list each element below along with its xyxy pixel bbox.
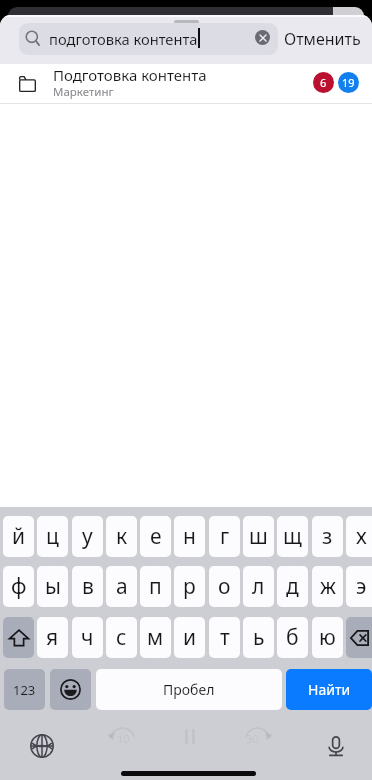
button[interactable]: в xyxy=(72,566,103,607)
button[interactable]: 123 xyxy=(4,669,45,710)
button[interactable]: я xyxy=(37,617,68,658)
staticText: 19 xyxy=(342,75,355,90)
button[interactable]: щ xyxy=(277,516,308,557)
button[interactable]: ж xyxy=(312,566,343,607)
button[interactable]: й xyxy=(3,516,34,557)
staticText: Подготовка контента xyxy=(53,65,207,85)
staticText: я xyxy=(46,623,59,652)
button[interactable]: з xyxy=(312,516,343,557)
button[interactable]: с xyxy=(106,617,137,658)
staticText: к xyxy=(116,522,128,551)
staticText: л xyxy=(252,572,265,601)
button[interactable]: Emoji xyxy=(50,669,91,710)
staticText: д xyxy=(286,572,299,601)
staticText: ш xyxy=(249,522,268,551)
button[interactable]: р xyxy=(174,566,205,607)
staticText: е xyxy=(150,522,162,551)
button[interactable]: л xyxy=(243,566,274,607)
staticText: х xyxy=(356,522,367,551)
staticText: ю xyxy=(319,623,336,652)
button[interactable]: Подготовка контента xyxy=(0,64,372,104)
staticText: Пробел xyxy=(163,680,215,699)
button[interactable]: ф xyxy=(3,566,34,607)
button[interactable]: Change language xyxy=(28,732,56,760)
button[interactable]: г xyxy=(209,516,240,557)
staticText: в xyxy=(82,572,94,601)
button[interactable]: Clear text xyxy=(255,30,270,45)
staticText: н xyxy=(183,522,196,551)
button[interactable]: ы xyxy=(37,566,68,607)
button[interactable]: подготовка контента xyxy=(19,23,278,55)
staticText: Найти xyxy=(308,680,351,699)
staticText: с xyxy=(116,623,127,652)
staticText: 10 xyxy=(117,731,130,746)
button[interactable]: ю xyxy=(312,617,343,658)
button[interactable]: Отменить xyxy=(284,23,364,55)
button[interactable]: б xyxy=(277,617,308,658)
button[interactable]: Backspace xyxy=(346,617,372,658)
button[interactable]: н xyxy=(174,516,205,557)
staticText: ь xyxy=(253,623,265,652)
button[interactable]: Пробел xyxy=(96,669,282,710)
button[interactable]: о xyxy=(209,566,240,607)
staticText: 123 xyxy=(13,681,36,699)
staticText: э xyxy=(356,572,367,601)
button[interactable]: Shift xyxy=(3,617,34,658)
staticText: м xyxy=(147,623,164,652)
staticText: з xyxy=(322,522,333,551)
staticText: г xyxy=(220,522,230,551)
button[interactable]: а xyxy=(106,566,137,607)
button[interactable]: ш xyxy=(243,516,274,557)
button[interactable]: у xyxy=(72,516,103,557)
staticText: а xyxy=(116,572,128,601)
button[interactable]: ч xyxy=(72,617,103,658)
staticText: щ xyxy=(283,522,302,551)
staticText: ц xyxy=(46,522,59,551)
staticText: 6 xyxy=(320,75,327,90)
staticText: р xyxy=(183,572,196,601)
staticText: и xyxy=(183,623,197,652)
staticText: у xyxy=(82,522,93,551)
button[interactable]: д xyxy=(277,566,308,607)
staticText: ж xyxy=(320,572,336,601)
staticText: подготовка контента xyxy=(49,29,198,49)
button[interactable]: х xyxy=(346,516,372,557)
button[interactable]: ц xyxy=(37,516,68,557)
button[interactable]: ь xyxy=(243,617,274,658)
button[interactable]: п xyxy=(140,566,171,607)
staticText: о xyxy=(218,572,231,601)
staticText: ч xyxy=(81,623,94,652)
button[interactable]: и xyxy=(174,617,205,658)
staticText: Отменить xyxy=(284,28,361,50)
button[interactable]: т xyxy=(209,617,240,658)
button[interactable]: Найти xyxy=(286,669,372,710)
staticText: Маркетинг xyxy=(53,84,114,100)
button[interactable]: м xyxy=(140,617,171,658)
button[interactable]: е xyxy=(140,516,171,557)
staticText: т xyxy=(220,623,230,652)
button[interactable]: Dictation xyxy=(322,732,350,760)
button[interactable]: э xyxy=(346,566,372,607)
staticText: ф xyxy=(11,572,27,601)
staticText: п xyxy=(149,572,162,601)
staticText: й xyxy=(12,522,26,551)
staticText: б xyxy=(286,623,299,652)
staticText: 30 xyxy=(246,731,259,746)
button[interactable]: к xyxy=(106,516,137,557)
staticText: ы xyxy=(45,572,61,601)
